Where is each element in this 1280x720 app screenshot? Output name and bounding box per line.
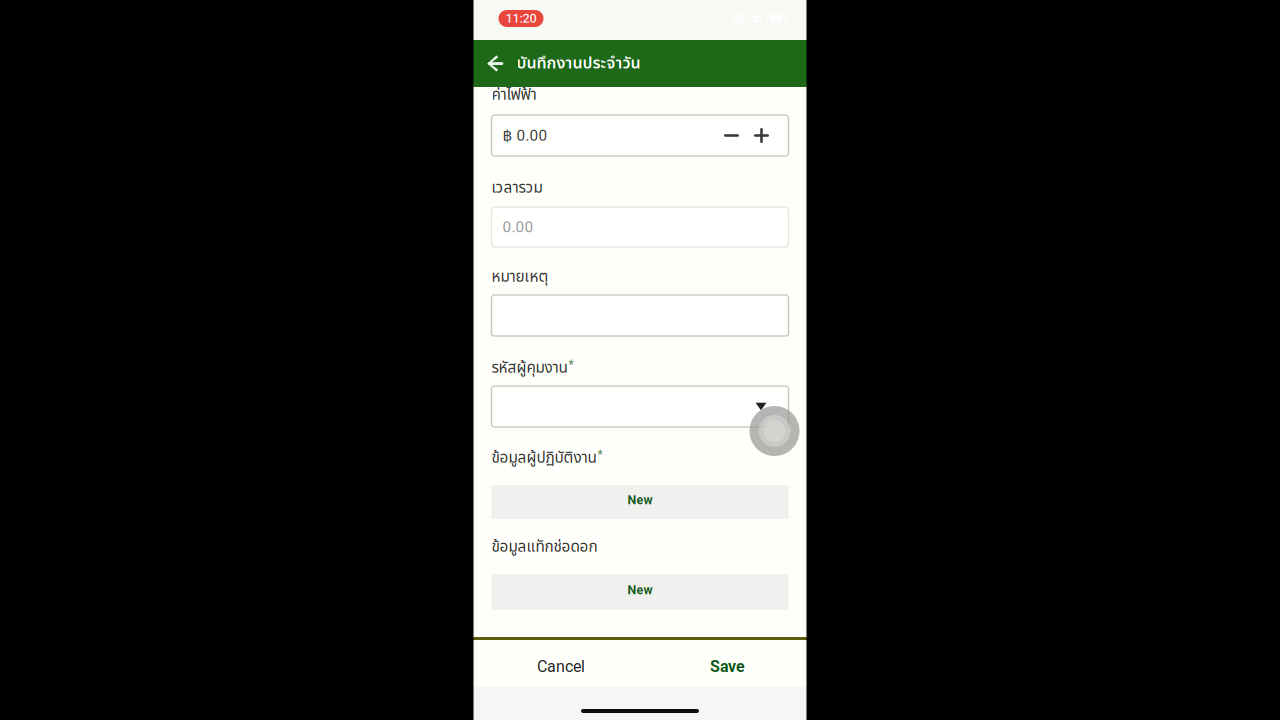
staticText: 11:20	[505, 11, 536, 26]
staticText: New	[627, 583, 652, 597]
button[interactable]: Electricity cost	[491, 115, 691, 156]
staticText: ข้อมูลแท็กช่อดอก	[491, 535, 597, 559]
button[interactable]: Decrease	[716, 119, 746, 151]
staticText: ค่าไฟฟ้า	[491, 83, 536, 107]
button[interactable]: Back	[480, 43, 510, 83]
staticText: หมายเหตุ	[491, 265, 548, 289]
staticText: รหัสผู้คุมงาน	[491, 356, 567, 380]
staticText: ฿ 0.00	[502, 126, 547, 144]
staticText: *	[568, 357, 573, 371]
staticText: New	[627, 493, 652, 507]
button[interactable]: New	[491, 485, 788, 519]
staticText: *	[597, 447, 602, 461]
staticText: Cancel	[537, 657, 585, 676]
staticText: 0.00	[502, 218, 533, 236]
button[interactable]: New	[491, 574, 788, 610]
button[interactable]: Supervisor code	[491, 386, 788, 427]
staticText: Save	[710, 657, 745, 676]
button[interactable]: 0.00	[491, 207, 788, 247]
button[interactable]: Notes	[491, 295, 788, 336]
button[interactable]: Increase	[746, 119, 776, 151]
button[interactable]: Cancel	[473, 637, 648, 690]
staticText: บันทึกงานประจำวัน	[516, 51, 640, 76]
staticText: ข้อมูลผู้ปฏิบัติงาน	[491, 446, 596, 470]
button[interactable]: Save	[648, 637, 806, 690]
staticText: เวลารวม	[491, 176, 542, 200]
